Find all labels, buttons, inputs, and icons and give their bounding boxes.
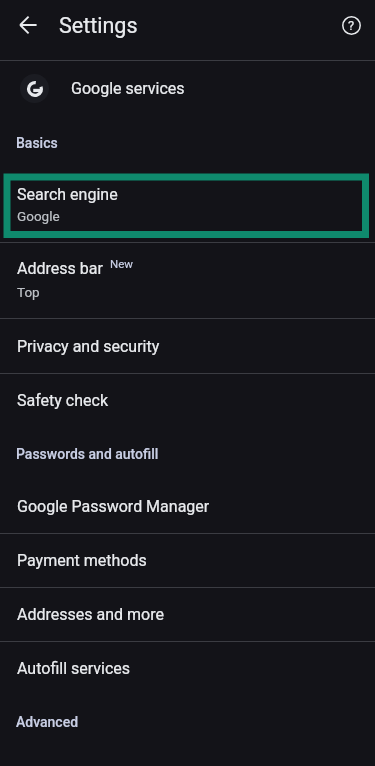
button[interactable]: Autofill services bbox=[0, 642, 375, 695]
staticText: Search engine bbox=[17, 185, 118, 204]
staticText: Settings bbox=[59, 13, 138, 38]
button[interactable]: Safety check bbox=[0, 374, 375, 427]
staticText: Address bar bbox=[17, 259, 103, 278]
button[interactable]: Addresses and more bbox=[0, 588, 375, 641]
staticText: Basics bbox=[16, 135, 58, 151]
staticText: Privacy and security bbox=[17, 337, 160, 356]
button[interactable]: Back bbox=[10, 7, 46, 43]
staticText: Autofill services bbox=[17, 659, 131, 678]
staticText: Google services bbox=[71, 79, 185, 98]
button[interactable]: Google Password Manager bbox=[0, 480, 375, 533]
staticText: Addresses and more bbox=[17, 605, 164, 624]
staticText: ? bbox=[348, 18, 355, 33]
button[interactable]: Google services bbox=[0, 61, 375, 116]
button[interactable]: Address bar bbox=[0, 243, 375, 318]
staticText: Safety check bbox=[17, 391, 108, 410]
button[interactable]: Payment methods bbox=[0, 534, 375, 587]
button[interactable]: Help bbox=[333, 7, 369, 43]
staticText: New bbox=[110, 257, 133, 270]
staticText: Google bbox=[17, 208, 60, 224]
staticText: Top bbox=[17, 284, 40, 300]
button[interactable]: Search engine bbox=[0, 170, 375, 242]
staticText: Advanced bbox=[16, 714, 79, 730]
staticText: Passwords and autofill bbox=[16, 446, 159, 462]
staticText: Payment methods bbox=[17, 551, 147, 570]
staticText: Google Password Manager bbox=[17, 497, 210, 516]
button[interactable]: Privacy and security bbox=[0, 319, 375, 373]
